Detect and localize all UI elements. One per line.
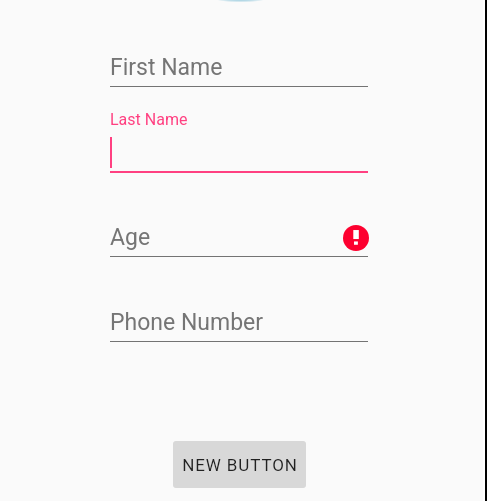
staticText: Phone Number xyxy=(110,309,264,336)
staticText: Last Name xyxy=(110,110,188,129)
button[interactable]: NEW BUTTON xyxy=(173,441,306,488)
button[interactable]: Age xyxy=(110,208,368,257)
button[interactable]: First Name xyxy=(110,38,368,87)
staticText: Age xyxy=(110,224,151,251)
button[interactable]: Last Name xyxy=(110,110,368,173)
staticText: NEW BUTTON xyxy=(182,455,298,475)
staticText: First Name xyxy=(110,54,223,81)
other: Invalid value xyxy=(343,225,369,251)
button[interactable]: Phone Number xyxy=(110,293,368,342)
